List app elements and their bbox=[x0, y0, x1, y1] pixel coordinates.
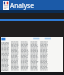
button[interactable]: Document logo bbox=[3, 1, 9, 10]
staticText: Analyse bbox=[10, 1, 34, 10]
